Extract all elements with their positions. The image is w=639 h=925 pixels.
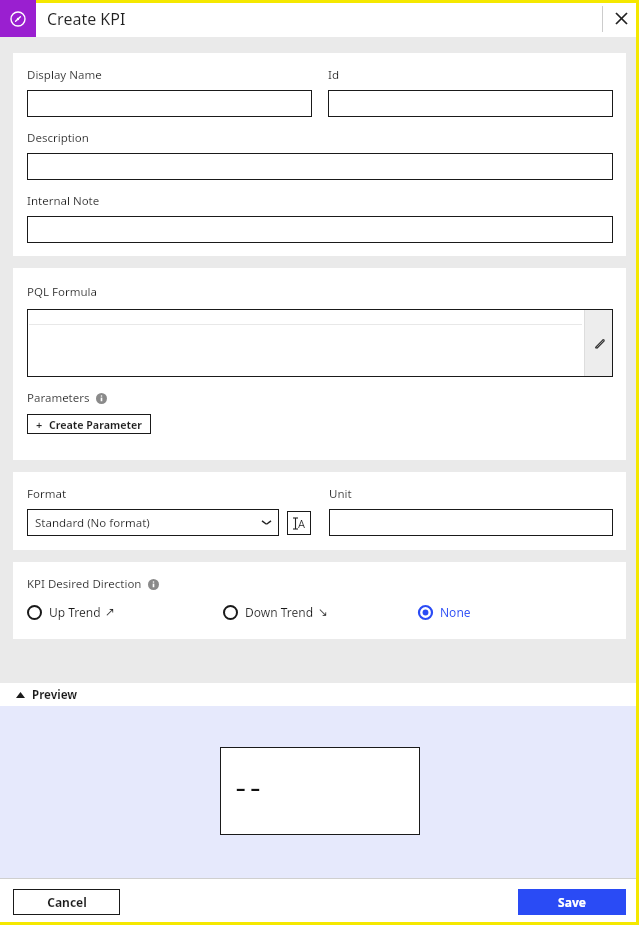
button[interactable] [27,153,613,180]
button[interactable]: Standard (No format) [27,509,279,536]
button[interactable] [27,216,613,243]
button[interactable]: + [27,414,151,434]
staticText: – – [236,775,260,801]
other: Information [148,579,159,590]
staticText: Preview [32,687,78,703]
staticText: Standard (No format) [35,515,150,531]
button[interactable]: Close [603,0,639,37]
staticText: KPI Desired Direction [27,576,142,592]
staticText: Unit [329,486,352,502]
staticText: Display Name [27,67,102,83]
staticText: Create KPI [47,8,126,30]
button[interactable]: Edit formula [27,309,613,377]
staticText: A [298,516,306,531]
button[interactable] [27,90,312,117]
staticText: Format [27,486,67,502]
staticText: Description [27,130,89,146]
button[interactable] [329,509,613,536]
button[interactable]: Up Trend [27,604,116,620]
staticText: ↗ [105,605,116,619]
button[interactable]: Down Trend [223,604,329,620]
staticText: Parameters [27,390,90,406]
staticText: Create Parameter [49,418,142,432]
other: Information [96,393,107,404]
staticText: None [440,604,471,620]
button[interactable]: – – [220,747,420,835]
staticText: ↘ [318,605,329,619]
button[interactable] [328,90,613,117]
staticText: + [36,417,43,432]
button[interactable]: App logo [0,0,36,37]
staticText: Save [558,894,586,910]
button[interactable]: Edit formula [585,309,613,377]
staticText: Down Trend [245,604,314,620]
button[interactable]: Save [518,889,626,915]
button[interactable]: Preview [0,683,639,706]
button[interactable]: Text format [287,511,311,535]
staticText: Up Trend [49,604,101,620]
staticText: PQL Formula [27,284,97,300]
staticText: Internal Note [27,193,100,209]
staticText: Cancel [47,894,87,910]
staticText: Id [328,67,339,83]
button[interactable]: Cancel [13,889,120,915]
button[interactable]: None [418,604,471,620]
